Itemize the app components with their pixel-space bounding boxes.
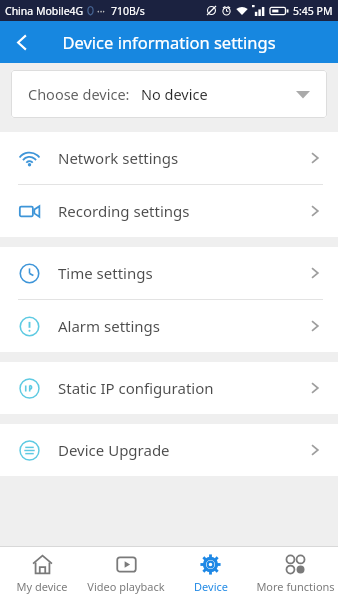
staticText: Alarm settings (58, 316, 161, 336)
button[interactable]: More functions (253, 547, 338, 600)
staticText: Device information settings (62, 31, 276, 53)
staticText: ··· (97, 4, 106, 18)
button[interactable]: Choose device: (11, 70, 327, 118)
button[interactable]: Static IP configuration (0, 362, 338, 414)
staticText: Device Upgrade (58, 440, 170, 460)
button[interactable]: Back (5, 25, 39, 59)
staticText: My device (16, 579, 68, 594)
button[interactable]: Device Upgrade (0, 424, 338, 476)
button[interactable]: Device (168, 547, 253, 600)
staticText: Choose device: (28, 84, 130, 104)
staticText: Static IP configuration (58, 378, 214, 398)
staticText: More functions (256, 579, 335, 594)
staticText: China Mobile4G (5, 4, 84, 18)
button[interactable]: Alarm settings (0, 300, 338, 352)
staticText: No device (141, 84, 208, 104)
staticText: Device (194, 579, 228, 594)
button[interactable]: Network settings (0, 132, 338, 184)
button[interactable]: Video playback (84, 547, 168, 600)
staticText: Time settings (58, 263, 153, 283)
staticText: Recording settings (58, 201, 190, 221)
button[interactable]: My device (0, 547, 84, 600)
staticText: 710B/s (111, 4, 145, 18)
staticText: Network settings (58, 148, 179, 168)
staticText: Video playback (87, 579, 165, 594)
button[interactable]: Recording settings (0, 185, 338, 237)
button[interactable]: Time settings (0, 247, 338, 299)
staticText: 5:45 PM (293, 4, 333, 18)
